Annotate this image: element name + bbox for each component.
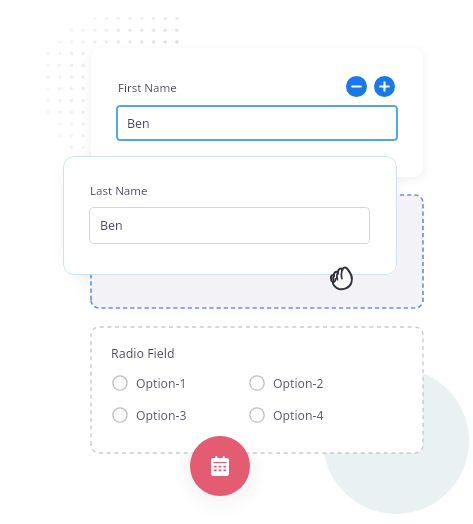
button[interactable]: Ben (89, 207, 370, 244)
staticText: Option-2 (273, 375, 324, 392)
button[interactable]: Add date field (190, 436, 250, 496)
button[interactable]: Ben (116, 105, 398, 141)
button[interactable]: Remove field (346, 76, 367, 97)
button[interactable]: Option-2 (249, 373, 324, 393)
staticText: First Name (118, 80, 177, 96)
staticText: Last Name (90, 183, 148, 199)
button[interactable]: Option-4 (249, 405, 324, 425)
staticText: Option-3 (136, 407, 187, 424)
staticText: Radio Field (111, 345, 175, 362)
button[interactable]: Option-1 (112, 373, 187, 393)
button[interactable]: Add field (374, 76, 395, 97)
staticText: Option-4 (273, 407, 324, 424)
staticText: Ben (100, 217, 123, 234)
staticText: Ben (127, 115, 150, 132)
staticText: Option-1 (136, 375, 187, 392)
other: Drag handle (329, 264, 353, 290)
button[interactable]: Option-3 (112, 405, 187, 425)
